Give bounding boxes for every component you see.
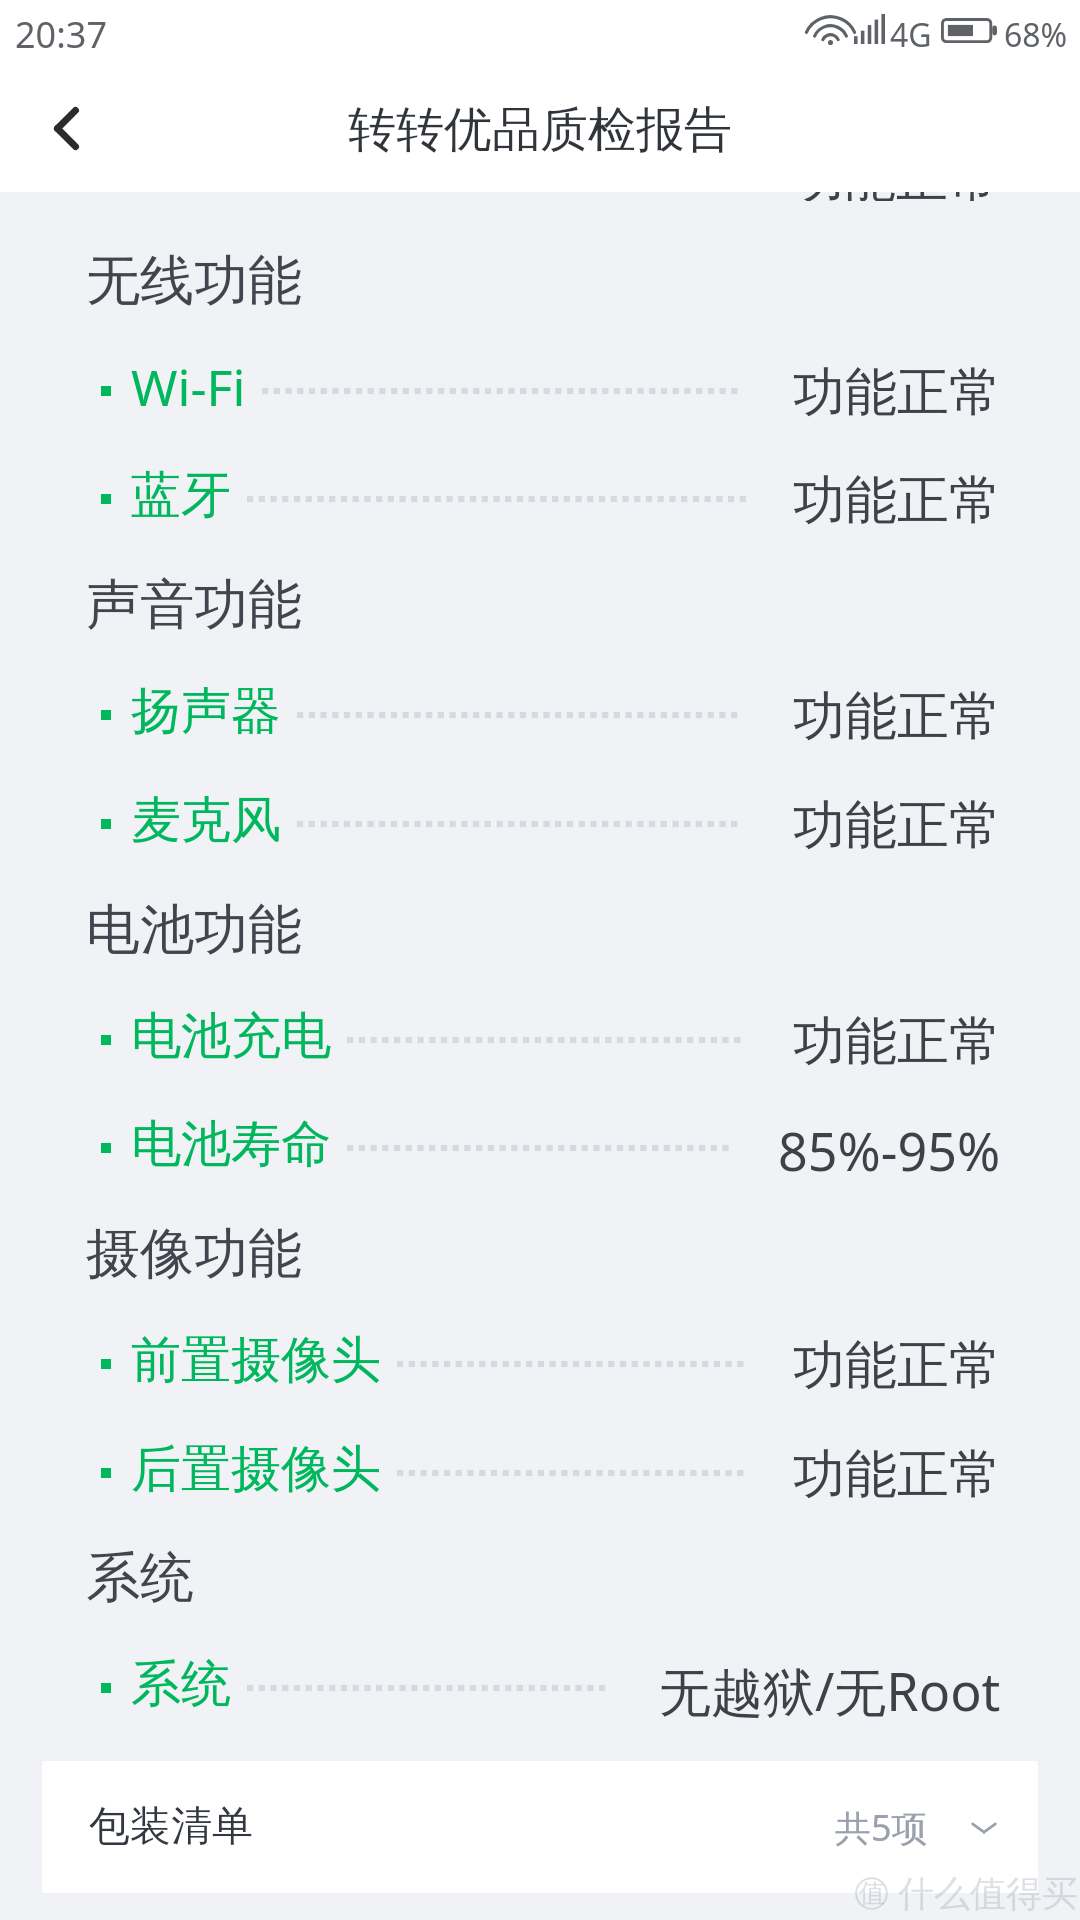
staticText: 蓝牙 <box>131 464 231 527</box>
button[interactable]: 电池寿命 <box>0 1094 1080 1202</box>
staticText: 功能正常 <box>793 1333 1001 1399</box>
button[interactable]: 电池充电 <box>0 986 1080 1094</box>
button[interactable]: 麦克风 <box>0 770 1080 878</box>
staticText: Wi-Fi <box>131 353 246 421</box>
button[interactable]: 系统 <box>0 1634 1080 1742</box>
button[interactable]: Back <box>6 68 126 188</box>
staticText: 前置摄像头 <box>131 1329 381 1392</box>
button[interactable]: Wi-Fi <box>0 337 1080 445</box>
staticText: 功能正常 <box>793 1442 1001 1508</box>
staticText: 功能正常 <box>793 468 1001 534</box>
staticText: 85%-95% <box>778 1115 1001 1186</box>
staticText: 麦克风 <box>131 789 281 852</box>
staticText: 什么值得买 <box>898 1871 1078 1916</box>
button[interactable]: 包装清单 <box>42 1761 1038 1893</box>
staticText: 无线功能 <box>86 247 302 315</box>
staticText: 包装清单 <box>89 1801 253 1853</box>
staticText: 电池充电 <box>131 1005 331 1068</box>
staticText: 电池寿命 <box>131 1113 331 1176</box>
staticText: 68% <box>1004 13 1068 57</box>
staticText: 扬声器 <box>131 680 281 743</box>
staticText: 系统 <box>86 1544 194 1612</box>
staticText: 20:37 <box>15 10 108 59</box>
staticText: 系统 <box>131 1653 231 1716</box>
button[interactable]: 扬声器 <box>0 661 1080 769</box>
staticText: 功能正常 <box>793 793 1001 859</box>
staticText: 声音功能 <box>86 571 302 639</box>
staticText: 功能正常 <box>793 1009 1001 1075</box>
staticText: 无越狱/无Root <box>659 1655 1001 1726</box>
staticText: 4G <box>890 13 932 57</box>
staticText: 功能正常 <box>793 684 1001 750</box>
button[interactable]: 后置摄像头 <box>0 1419 1080 1527</box>
staticText: 共5项 <box>835 1803 928 1852</box>
staticText: 后置摄像头 <box>131 1438 381 1501</box>
staticText: 功能正常 <box>793 360 1001 426</box>
staticText: 转转优品质检报告 <box>348 100 732 160</box>
staticText: 值 <box>859 1877 885 1910</box>
staticText: 摄像功能 <box>86 1220 302 1288</box>
staticText: 电池功能 <box>86 896 302 964</box>
button[interactable]: 前置摄像头 <box>0 1310 1080 1418</box>
staticText: 功能正常 <box>792 192 1000 201</box>
button[interactable]: 蓝牙 <box>0 445 1080 553</box>
